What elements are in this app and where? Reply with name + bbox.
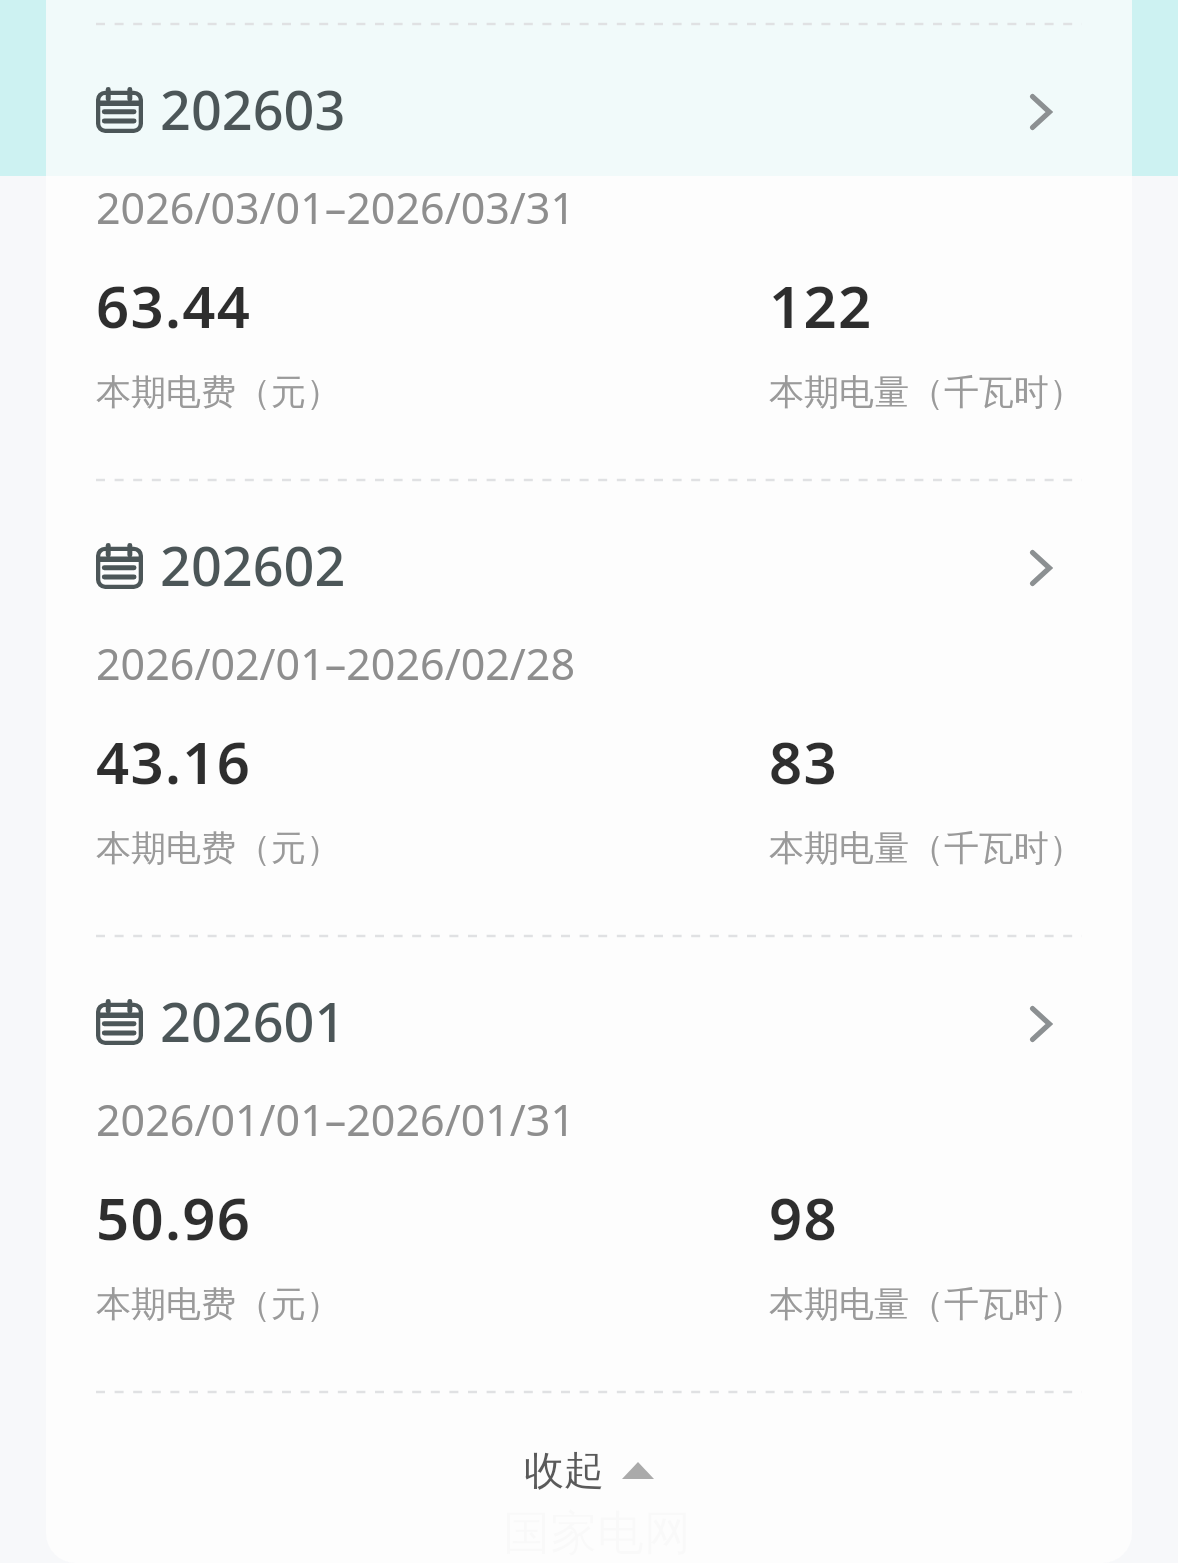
staticText: 2026/02/01–2026/02/28 <box>96 634 576 693</box>
staticText: 202603 <box>160 72 346 146</box>
staticText: 本期电费（元） <box>96 1282 341 1326</box>
other: 查看账单详情 <box>1030 94 1052 130</box>
button[interactable]: 202601 <box>46 959 1132 1083</box>
staticText: 43.16 <box>96 722 252 801</box>
other: 查看账单详情 <box>1030 1006 1052 1042</box>
staticText: 2026/03/01–2026/03/31 <box>96 178 576 237</box>
staticText: 2026/01/01–2026/01/31 <box>96 1090 576 1149</box>
staticText: 63.44 <box>96 266 252 345</box>
staticText: 收起 <box>524 1445 604 1495</box>
staticText: 本期电量（千瓦时） <box>769 826 1084 870</box>
staticText: 83 <box>769 722 838 801</box>
staticText: 本期电费（元） <box>96 370 341 414</box>
button[interactable]: 202603 <box>46 47 1132 171</box>
staticText: 50.96 <box>96 1178 252 1257</box>
staticText: 122 <box>769 266 873 345</box>
staticText: 202601 <box>160 984 346 1058</box>
staticText: 202602 <box>160 528 346 602</box>
staticText: 本期电量（千瓦时） <box>769 370 1084 414</box>
staticText: 98 <box>769 1178 838 1257</box>
staticText: 本期电量（千瓦时） <box>769 1282 1084 1326</box>
button[interactable]: 收起 <box>46 1405 1132 1535</box>
button[interactable]: 202602 <box>46 503 1132 627</box>
staticText: 本期电费（元） <box>96 826 341 870</box>
other: 查看账单详情 <box>1030 550 1052 586</box>
